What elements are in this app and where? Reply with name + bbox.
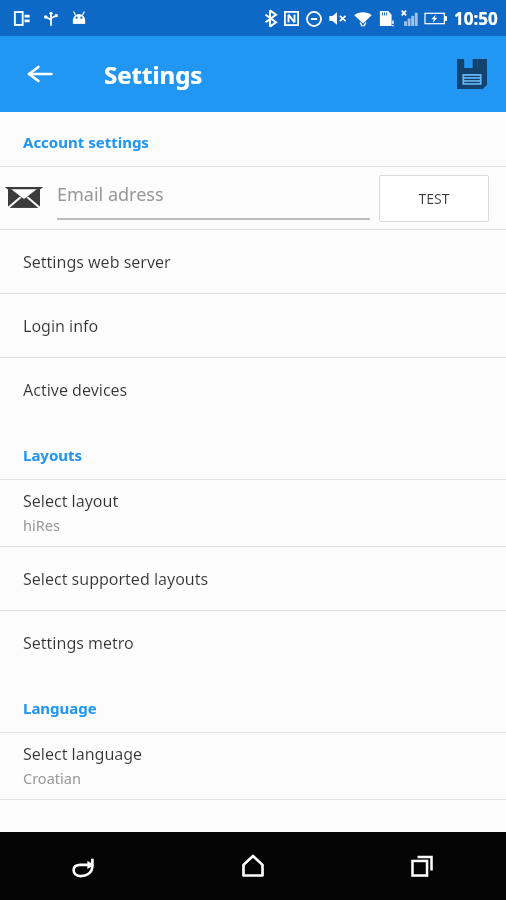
staticText: Select language [23,743,143,765]
staticText: 10:50 [454,7,498,30]
staticText: Select supported layouts [23,568,209,590]
button[interactable]: Active devices [0,358,506,421]
staticText: Language [23,698,97,718]
button[interactable]: Login info [0,294,506,357]
staticText: Email adress [57,182,164,207]
button[interactable]: Select layout [0,480,506,546]
button[interactable]: Home [168,832,337,900]
button[interactable]: Settings web server [0,230,506,293]
button[interactable]: Back [0,832,168,900]
button[interactable]: Settings metro [0,611,506,674]
staticText: Settings web server [23,251,171,273]
button[interactable]: Recent apps [337,832,506,900]
button[interactable]: Back [16,50,64,98]
button[interactable]: Select supported layouts [0,547,506,610]
staticText: Select layout [23,490,119,512]
button[interactable]: Select language [0,733,506,799]
staticText: Settings [104,58,203,91]
staticText: Settings metro [23,632,134,654]
staticText: Login info [23,315,99,337]
button[interactable]: Save [448,50,496,98]
button[interactable]: TEST [379,175,489,222]
staticText: Layouts [23,445,83,465]
staticText: Croatian [23,768,81,788]
staticText: Account settings [23,132,149,152]
staticText: Active devices [23,379,128,401]
button[interactable]: Email adress [57,167,370,229]
staticText: TEST [418,189,450,208]
staticText: hiRes [23,515,60,535]
